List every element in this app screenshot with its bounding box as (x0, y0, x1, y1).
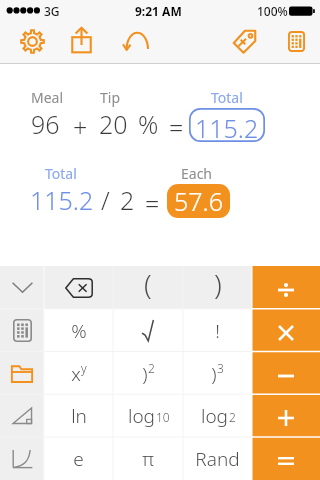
staticText: 2 (120, 183, 135, 217)
button[interactable]: Minus (252, 352, 320, 395)
staticText: ( (144, 265, 152, 303)
other: Graph (11, 449, 33, 469)
staticText: Total (211, 88, 243, 107)
button[interactable]: ) (183, 266, 252, 309)
button[interactable]: ! (183, 309, 252, 352)
button[interactable]: ln (44, 394, 113, 437)
staticText: % (138, 107, 159, 141)
staticText: 115.2 (195, 111, 259, 145)
button[interactable]: Hide keyboard (0, 266, 44, 309)
button[interactable]: e (44, 437, 113, 480)
staticText: 10 (156, 409, 170, 425)
staticText: 100% (257, 3, 288, 19)
staticText: 20 (99, 107, 128, 141)
button[interactable]: Tag (222, 19, 266, 63)
staticText: 57.6 (174, 184, 223, 218)
button[interactable]: ) (113, 352, 183, 395)
button[interactable]: Calculator (274, 19, 318, 63)
button[interactable]: ( (113, 266, 183, 309)
staticText: Total (45, 164, 77, 183)
button[interactable]: Settings (10, 19, 54, 63)
staticText: e (73, 446, 84, 472)
button[interactable]: Share (59, 18, 103, 62)
staticText: = (169, 110, 184, 144)
button[interactable]: Graph (0, 437, 44, 480)
staticText: / (101, 183, 110, 217)
other: Plus (278, 410, 294, 426)
other: Square root (142, 320, 154, 341)
button[interactable]: 115.2 (189, 108, 265, 142)
button[interactable]: Rand (183, 437, 252, 480)
button[interactable]: x (44, 352, 113, 395)
button[interactable]: % (44, 309, 113, 352)
staticText: 2 (148, 360, 155, 376)
button[interactable]: Equals (252, 437, 320, 480)
button[interactable]: Trigonometry (0, 394, 44, 437)
staticText: 3 (217, 360, 224, 376)
staticText: x (71, 361, 81, 387)
staticText: + (73, 110, 88, 144)
staticText: ! (215, 318, 220, 344)
button[interactable]: Square root (113, 309, 183, 352)
other: Divide (278, 283, 294, 297)
other: Calculator (13, 319, 32, 342)
staticText: ) (211, 361, 217, 387)
staticText: = (145, 186, 160, 220)
other: Delete (65, 278, 93, 298)
button[interactable]: π (113, 437, 183, 480)
button[interactable]: Divide (252, 266, 320, 309)
other: Memory (11, 364, 33, 383)
staticText: 115.2 (30, 183, 94, 217)
button[interactable]: Multiply (252, 309, 320, 352)
staticText: ) (214, 265, 222, 303)
button[interactable]: Undo (114, 19, 158, 63)
staticText: 9:21 AM (135, 3, 182, 19)
button[interactable]: Plus (252, 394, 320, 437)
staticText: π (142, 446, 154, 472)
staticText: Tip (100, 88, 121, 107)
button[interactable]: Memory (0, 352, 44, 395)
button[interactable]: 57.6 (167, 184, 230, 218)
staticText: Meal (31, 88, 64, 107)
staticText: y (81, 360, 87, 376)
staticText: log (128, 403, 155, 429)
other: Trigonometry (12, 407, 33, 425)
staticText: ) (142, 361, 148, 387)
staticText: 3G (44, 3, 60, 19)
button[interactable]: Delete (44, 266, 113, 309)
staticText: Rand (195, 446, 240, 472)
staticText: % (71, 318, 87, 344)
button[interactable]: ) (183, 352, 252, 395)
button[interactable]: log (113, 394, 183, 437)
other: Minus (278, 374, 294, 378)
staticText: 2 (229, 409, 236, 425)
staticText: log (201, 403, 228, 429)
staticText: Each (181, 164, 213, 183)
other: Multiply (279, 326, 293, 340)
button[interactable]: Calculator (0, 309, 44, 352)
staticText: 96 (31, 107, 60, 141)
other: Equals (278, 457, 294, 465)
other: Hide keyboard (12, 282, 33, 293)
staticText: ln (71, 403, 87, 429)
button[interactable]: log (183, 394, 252, 437)
